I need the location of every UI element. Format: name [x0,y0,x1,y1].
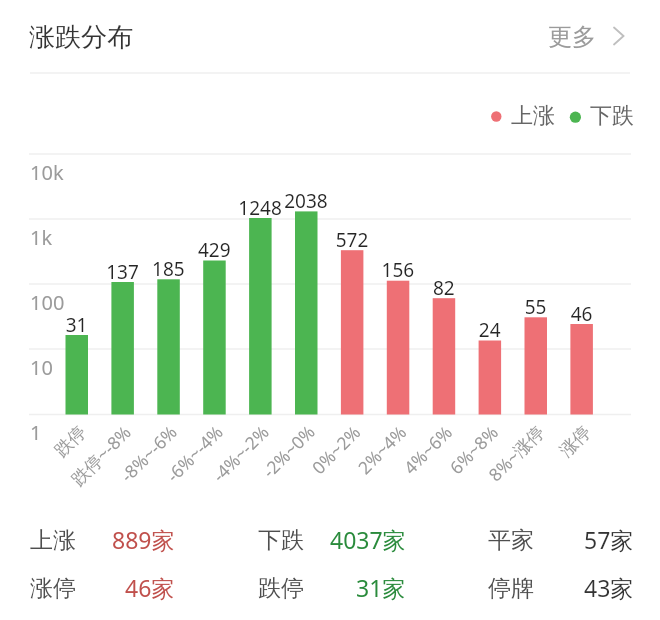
button[interactable] [536,14,636,58]
